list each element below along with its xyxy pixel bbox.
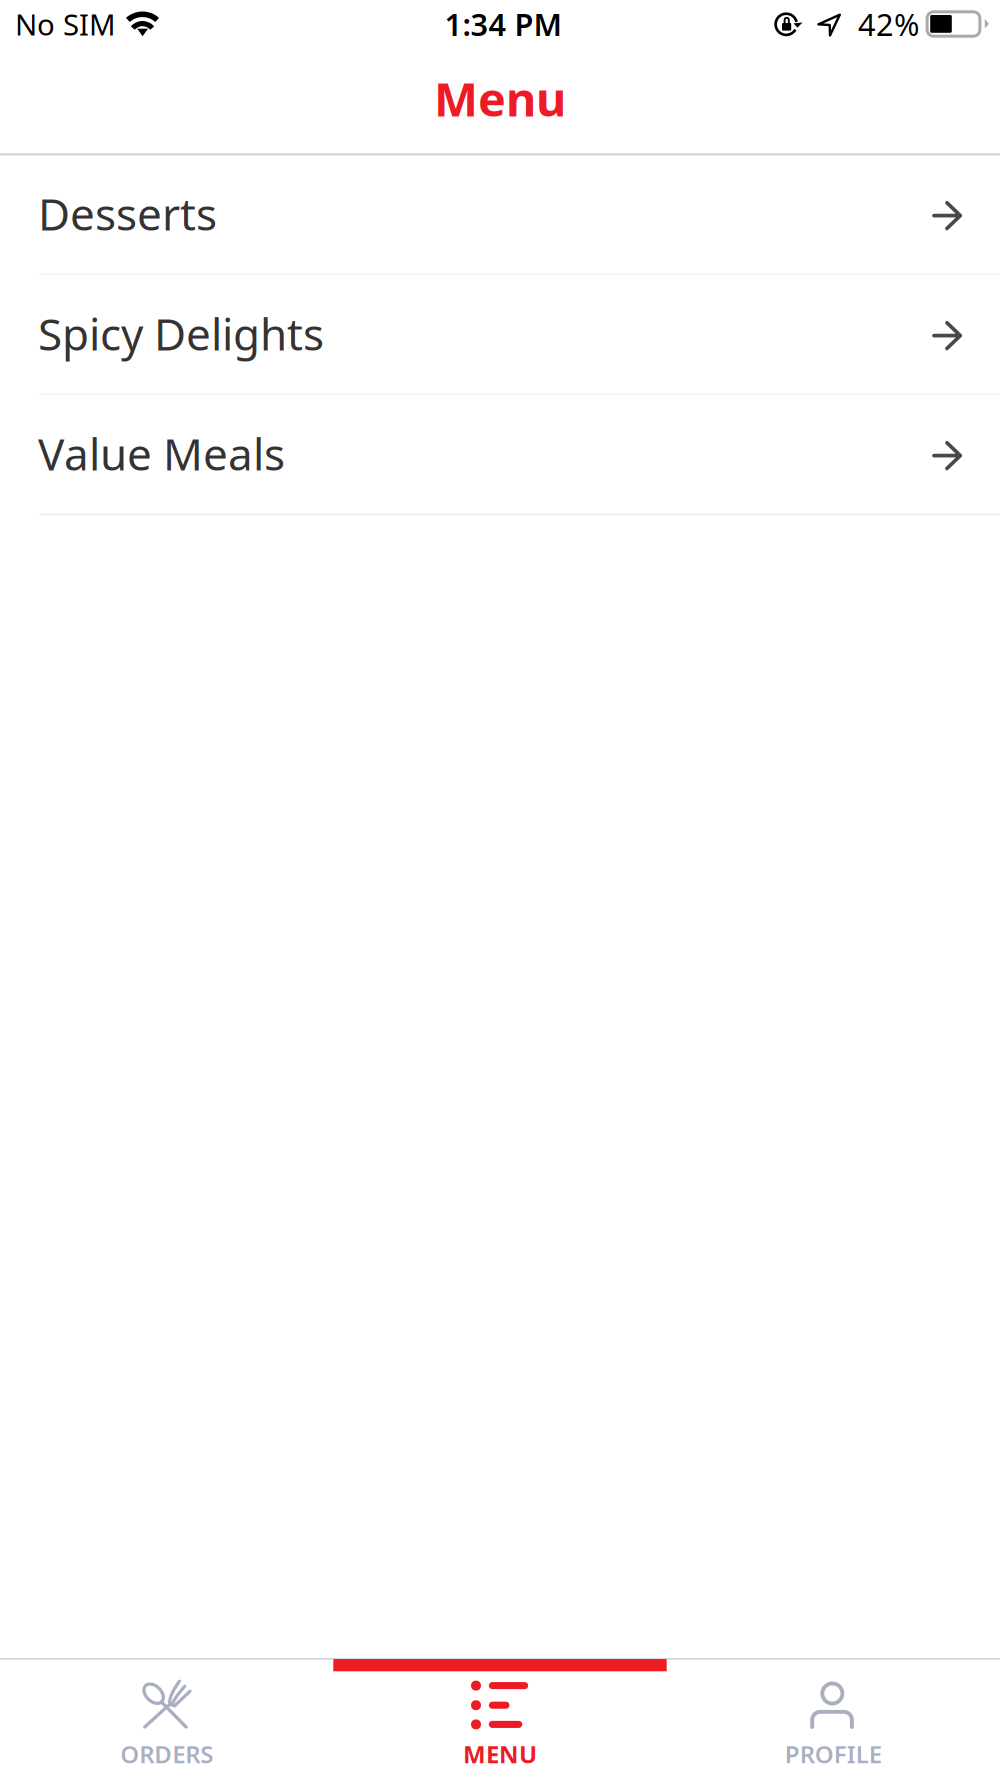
staticText: ORDERS <box>120 1738 213 1770</box>
staticText: 42% <box>858 4 919 44</box>
button[interactable]: Desserts <box>0 156 1000 276</box>
staticText: MENU <box>463 1738 537 1770</box>
button[interactable]: ORDERS <box>0 1658 333 1778</box>
button[interactable]: MENU <box>333 1658 667 1778</box>
staticText: Menu <box>434 67 566 129</box>
staticText: Desserts <box>38 184 217 243</box>
staticText: Spicy Delights <box>38 304 324 363</box>
staticText: Value Meals <box>38 424 285 483</box>
staticText: PROFILE <box>785 1738 882 1770</box>
button[interactable]: Value Meals <box>0 396 1000 516</box>
staticText: 1:34 PM <box>444 4 561 44</box>
button[interactable]: PROFILE <box>667 1658 1000 1778</box>
staticText: No SIM <box>15 4 116 43</box>
button[interactable]: Spicy Delights <box>0 276 1000 396</box>
